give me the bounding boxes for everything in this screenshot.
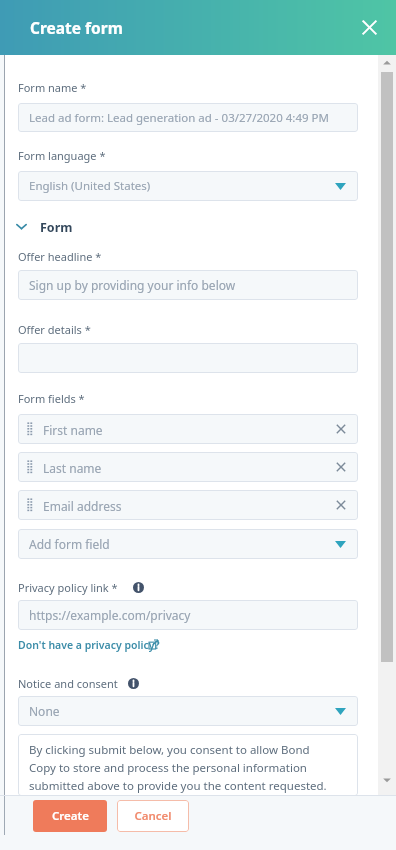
staticText: Form — [40, 219, 73, 236]
staticText: Offer details * — [18, 322, 91, 337]
staticText: Form fields * — [18, 391, 85, 406]
button[interactable]: Close — [356, 14, 383, 41]
staticText: Email address — [43, 498, 122, 514]
button[interactable]: None — [18, 696, 358, 726]
button[interactable]: Cancel — [117, 800, 189, 832]
staticText: By clicking submit below, you consent to… — [29, 742, 327, 793]
staticText: Form name * — [18, 80, 87, 95]
button[interactable]: Sign up by providing your info below — [18, 270, 358, 300]
button[interactable]: Create — [33, 800, 107, 832]
staticText: Offer headline * — [18, 249, 102, 264]
staticText: English (United States) — [29, 178, 151, 194]
staticText: Cancel — [134, 808, 172, 824]
staticText: Last name — [43, 460, 102, 476]
button[interactable]: https://example.com/privacy — [18, 600, 358, 630]
button[interactable]: Form — [14, 215, 104, 237]
staticText: Privacy policy link * — [18, 580, 118, 595]
staticText: First name — [43, 422, 103, 438]
button[interactable]: English (United States) — [18, 171, 358, 201]
button[interactable]: Lead ad form: Lead generation ad - 03/27… — [18, 103, 358, 132]
staticText: Create — [52, 808, 89, 824]
staticText: https://example.com/privacy — [29, 607, 191, 623]
button[interactable]: By clicking submit below, you consent to… — [18, 734, 358, 796]
staticText: Create form — [30, 17, 123, 38]
button[interactable] — [18, 343, 358, 373]
button[interactable]: Last name — [18, 452, 358, 482]
button[interactable]: Remove Last name — [332, 458, 350, 476]
button[interactable]: Email address — [18, 490, 358, 520]
button[interactable]: Remove Email address — [332, 496, 350, 514]
button[interactable]: Remove First name — [332, 420, 350, 438]
button[interactable]: First name — [18, 414, 358, 444]
button[interactable]: Don't have a privacy policy? — [16, 636, 166, 654]
staticText: None — [29, 703, 60, 719]
staticText: Lead ad form: Lead generation ad - 03/27… — [29, 110, 329, 126]
staticText: Sign up by providing your info below — [29, 277, 236, 293]
staticText: Notice and consent — [18, 676, 118, 691]
staticText: Add form field — [29, 536, 110, 552]
staticText: Form language * — [18, 148, 106, 163]
button[interactable]: Add form field — [18, 529, 358, 559]
staticText: Don't have a privacy policy? — [18, 638, 160, 652]
